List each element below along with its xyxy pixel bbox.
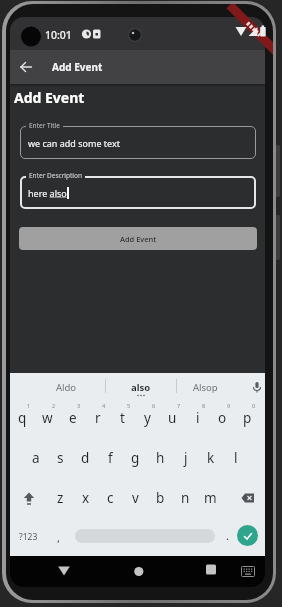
- staticText: k: [207, 449, 215, 467]
- button[interactable]: a: [23, 438, 48, 478]
- staticText: 9: [227, 402, 231, 409]
- button[interactable]: j: [173, 438, 198, 478]
- staticText: Aldo: [56, 381, 77, 394]
- button[interactable]: [75, 529, 215, 543]
- button[interactable]: k: [198, 438, 223, 478]
- staticText: b: [156, 489, 165, 507]
- staticText: Add Event: [120, 234, 157, 244]
- staticText: d: [81, 449, 90, 467]
- button[interactable]: we can add some text: [20, 126, 256, 159]
- staticText: i: [196, 409, 200, 427]
- staticText: f: [108, 449, 113, 467]
- button[interactable]: Aldo: [10, 373, 105, 398]
- button[interactable]: [199, 559, 223, 583]
- staticText: g: [131, 449, 140, 467]
- button[interactable]: w: [35, 398, 60, 438]
- button[interactable]: ?123: [10, 518, 46, 556]
- button[interactable]: [10, 478, 48, 518]
- staticText: q: [18, 409, 27, 427]
- button[interactable]: f: [98, 438, 123, 478]
- staticText: r: [95, 409, 101, 427]
- button[interactable]: v: [123, 478, 148, 518]
- staticText: m: [204, 489, 217, 507]
- button[interactable]: Alsop: [177, 373, 243, 398]
- button[interactable]: [243, 373, 265, 398]
- staticText: Enter Title: [29, 121, 60, 130]
- staticText: v: [132, 489, 139, 507]
- staticText: h: [156, 449, 165, 467]
- staticText: 1: [27, 402, 31, 409]
- button[interactable]: .: [215, 518, 239, 556]
- staticText: c: [107, 489, 114, 507]
- staticText: w: [42, 409, 53, 427]
- staticText: 3: [77, 402, 81, 409]
- staticText: Add Event: [52, 60, 103, 74]
- staticText: also: [131, 381, 151, 394]
- staticText: Add Event: [14, 88, 85, 107]
- button[interactable]: i: [185, 398, 210, 438]
- button[interactable]: q: [10, 398, 35, 438]
- button[interactable]: [239, 518, 265, 556]
- staticText: t: [120, 409, 125, 427]
- staticText: e: [69, 409, 77, 427]
- staticText: 4: [102, 402, 106, 409]
- button[interactable]: e: [60, 398, 85, 438]
- staticText: 5: [127, 402, 131, 409]
- button[interactable]: y: [135, 398, 160, 438]
- staticText: 10:01: [45, 28, 72, 42]
- staticText: here also: [28, 187, 67, 199]
- button[interactable]: [52, 559, 76, 583]
- staticText: s: [57, 449, 64, 467]
- staticText: ,: [57, 530, 60, 545]
- staticText: 8: [202, 402, 206, 409]
- button[interactable]: n: [173, 478, 198, 518]
- staticText: .: [226, 528, 229, 543]
- staticText: p: [243, 409, 252, 427]
- staticText: z: [57, 489, 64, 507]
- staticText: a: [32, 449, 40, 467]
- staticText: 0: [252, 402, 256, 409]
- button[interactable]: b: [148, 478, 173, 518]
- button[interactable]: p: [235, 398, 260, 438]
- button[interactable]: x: [73, 478, 98, 518]
- button[interactable]: t: [110, 398, 135, 438]
- staticText: Enter Description: [29, 171, 82, 180]
- staticText: y: [144, 409, 151, 427]
- button[interactable]: l: [223, 438, 248, 478]
- button[interactable]: here also: [20, 176, 256, 209]
- button[interactable]: ,: [46, 518, 70, 556]
- staticText: ?123: [19, 531, 38, 543]
- button[interactable]: [223, 478, 265, 518]
- staticText: j: [184, 449, 188, 467]
- button[interactable]: u: [160, 398, 185, 438]
- staticText: u: [168, 409, 177, 427]
- staticText: Alsop: [193, 381, 218, 394]
- button[interactable]: o: [210, 398, 235, 438]
- button[interactable]: d: [73, 438, 98, 478]
- button[interactable]: [127, 559, 151, 583]
- button[interactable]: z: [48, 478, 73, 518]
- staticText: 7: [177, 402, 181, 409]
- button[interactable]: s: [48, 438, 73, 478]
- staticText: 6: [152, 402, 156, 409]
- button[interactable]: c: [98, 478, 123, 518]
- button[interactable]: g: [123, 438, 148, 478]
- staticText: n: [181, 489, 190, 507]
- button[interactable]: h: [148, 438, 173, 478]
- staticText: 2: [52, 402, 56, 409]
- button[interactable]: m: [198, 478, 223, 518]
- staticText: we can add some text: [28, 137, 120, 149]
- staticText: o: [218, 409, 227, 427]
- button[interactable]: r: [85, 398, 110, 438]
- button[interactable]: Add Event: [19, 227, 257, 250]
- button[interactable]: also: [106, 373, 176, 398]
- staticText: l: [234, 449, 238, 467]
- staticText: x: [82, 489, 90, 507]
- button[interactable]: [14, 55, 38, 79]
